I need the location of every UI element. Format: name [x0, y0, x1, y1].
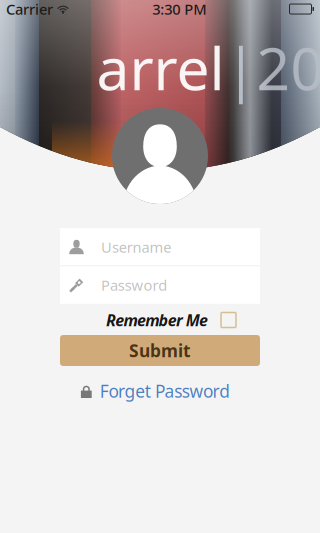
staticText: Carrier [6, 0, 53, 19]
button[interactable]: Forget Password [80, 380, 230, 402]
staticText: Password [101, 275, 167, 295]
staticText: |20 [224, 28, 320, 106]
button[interactable]: Remember Me [106, 309, 236, 331]
staticText: 3:30 PM [152, 0, 206, 19]
staticText: Submit [129, 339, 191, 362]
button[interactable]: Username [60, 228, 260, 265]
button[interactable]: Password [60, 266, 260, 303]
staticText: Username [101, 237, 171, 257]
staticText: Forget Password [100, 379, 230, 402]
staticText: arrel [96, 28, 224, 106]
staticText: Remember Me [106, 309, 208, 331]
button[interactable]: Submit [60, 335, 260, 366]
